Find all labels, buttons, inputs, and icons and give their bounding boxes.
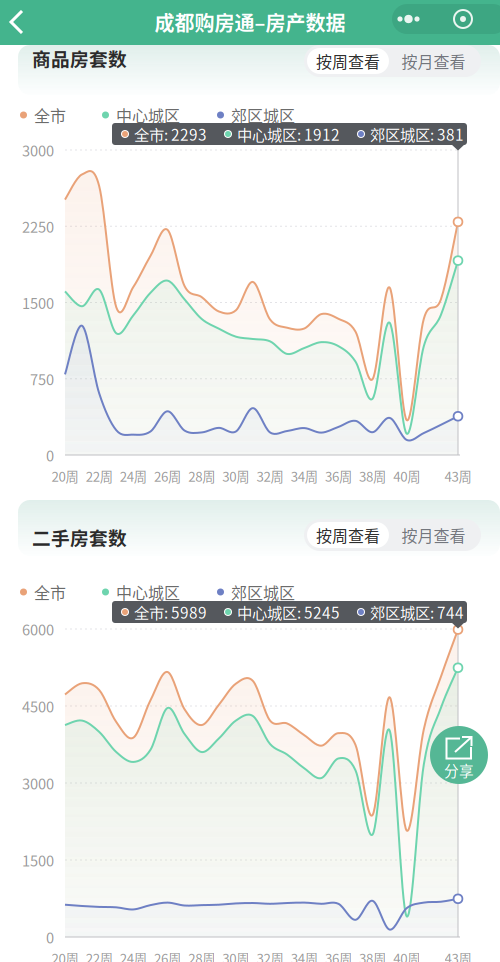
staticText: 38周 <box>359 466 386 486</box>
button[interactable]: 按月查看 <box>389 48 478 74</box>
staticText: 分享 <box>444 759 474 781</box>
staticText: 26周 <box>154 466 181 486</box>
button[interactable]: More <box>392 4 426 34</box>
staticText: 全市 <box>34 103 66 127</box>
staticText: 按月查看 <box>401 49 465 73</box>
staticText: 36周 <box>325 948 352 962</box>
button[interactable]: 分享 <box>430 726 488 784</box>
staticText: 34周 <box>291 466 318 486</box>
staticText: 24周 <box>120 948 147 962</box>
staticText: 22周 <box>86 466 113 486</box>
staticText: 38周 <box>359 948 386 962</box>
staticText: 40周 <box>393 466 420 486</box>
staticText: 二手房套数 <box>32 523 127 550</box>
staticText: 2250 <box>22 216 54 237</box>
staticText: 按月查看 <box>401 523 465 547</box>
staticText: 郊区城区: 744 <box>370 601 464 623</box>
staticText: 中心城区: 1912 <box>237 123 340 145</box>
staticText: 750 <box>30 368 54 389</box>
staticText: 郊区城区 <box>231 103 295 127</box>
staticText: 中心城区 <box>116 103 180 127</box>
button[interactable]: Capsule menu <box>452 4 476 34</box>
staticText: 34周 <box>291 948 318 962</box>
staticText: 26周 <box>154 948 181 962</box>
staticText: 全市: 2293 <box>134 123 207 145</box>
staticText: 30周 <box>222 948 249 962</box>
staticText: 43周 <box>444 466 471 486</box>
staticText: 商品房套数 <box>32 44 127 71</box>
button[interactable]: 按周查看 <box>307 48 389 74</box>
staticText: 24周 <box>120 466 147 486</box>
staticText: 3000 <box>22 139 54 161</box>
staticText: 1500 <box>22 849 54 871</box>
staticText: 0 <box>46 444 54 466</box>
staticText: 40周 <box>393 948 420 962</box>
staticText: 22周 <box>86 948 113 962</box>
staticText: 32周 <box>256 466 283 486</box>
staticText: 36周 <box>325 466 352 486</box>
staticText: 郊区城区 <box>231 580 295 604</box>
staticText: 成都购房通–房产数据 <box>154 7 345 36</box>
button[interactable]: 按月查看 <box>389 522 478 548</box>
staticText: 28周 <box>188 466 215 486</box>
staticText: 中心城区: 5245 <box>237 601 340 623</box>
staticText: 郊区城区: 381 <box>370 123 464 145</box>
staticText: 全市: 5989 <box>134 601 207 623</box>
button[interactable]: Back <box>2 3 42 41</box>
staticText: 4500 <box>22 695 54 717</box>
staticText: 20周 <box>51 948 78 962</box>
staticText: 32周 <box>256 948 283 962</box>
button[interactable]: 按周查看 <box>307 522 389 548</box>
staticText: 按周查看 <box>316 49 380 73</box>
staticText: 中心城区 <box>116 580 180 604</box>
staticText: 全市 <box>34 580 66 604</box>
staticText: 6000 <box>22 618 54 640</box>
staticText: 28周 <box>188 948 215 962</box>
staticText: 30周 <box>222 466 249 486</box>
staticText: 43周 <box>444 948 471 962</box>
staticText: 按周查看 <box>316 523 380 547</box>
staticText: 1500 <box>22 292 54 313</box>
staticText: 0 <box>46 926 54 948</box>
staticText: 20周 <box>51 466 78 486</box>
staticText: 3000 <box>22 772 54 794</box>
